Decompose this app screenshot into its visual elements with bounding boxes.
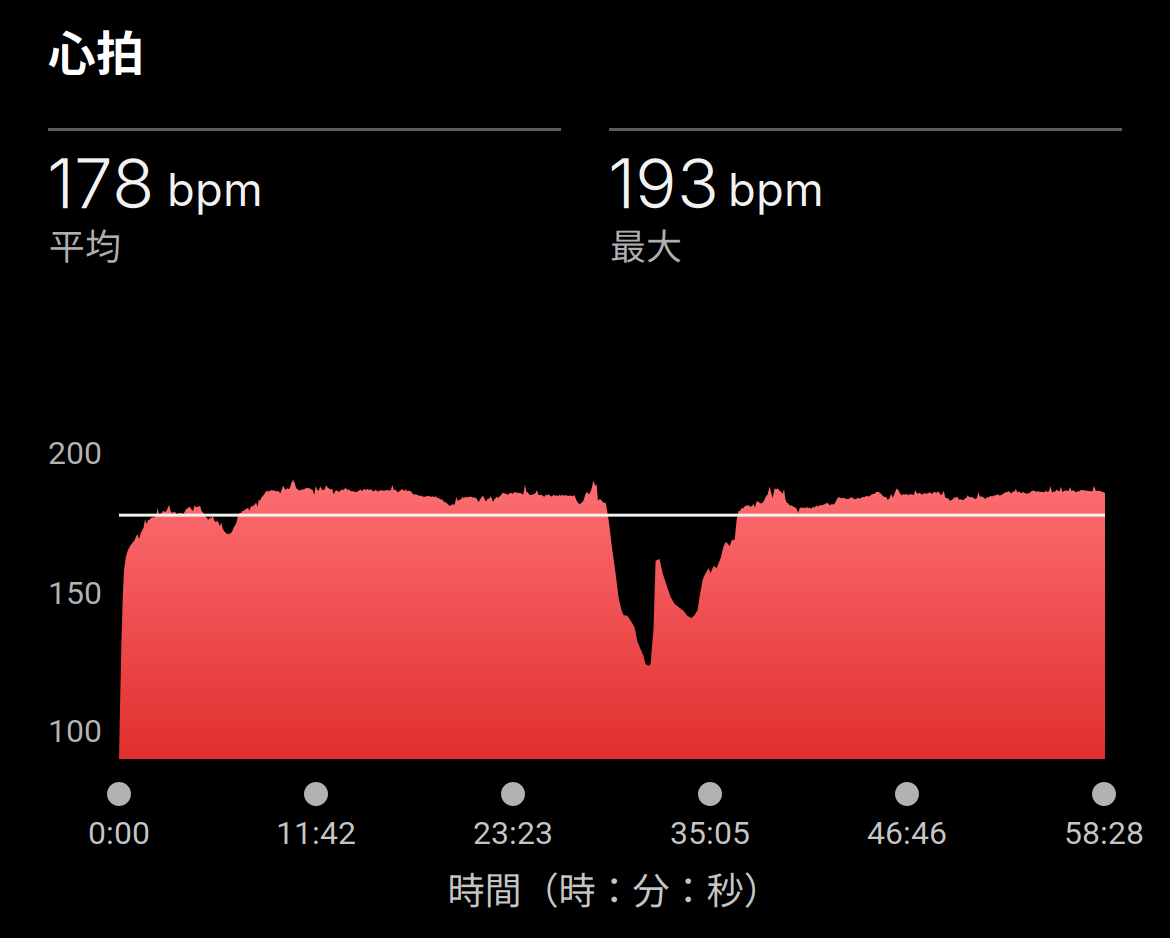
- button[interactable]: 178: [48, 128, 561, 268]
- staticText: bpm: [728, 162, 824, 217]
- staticText: 58:28: [1064, 814, 1144, 852]
- staticText: 0:00: [88, 814, 150, 852]
- staticText: 193: [608, 141, 719, 225]
- staticText: 200: [48, 434, 102, 472]
- staticText: 100: [48, 712, 102, 750]
- staticText: bpm: [167, 162, 263, 217]
- staticText: 35:05: [670, 814, 750, 852]
- staticText: 178: [47, 141, 154, 225]
- button[interactable]: 心拍グラフ: [0, 0, 1170, 938]
- staticText: 平均: [49, 218, 121, 270]
- staticText: 11:42: [276, 814, 356, 852]
- staticText: 46:46: [867, 814, 947, 852]
- staticText: 心拍: [48, 15, 144, 85]
- staticText: 23:23: [473, 814, 553, 852]
- staticText: 時間（時：分：秒）: [447, 861, 780, 915]
- button[interactable]: 193: [609, 128, 1122, 268]
- staticText: 150: [48, 574, 102, 612]
- staticText: 最大: [610, 218, 682, 270]
